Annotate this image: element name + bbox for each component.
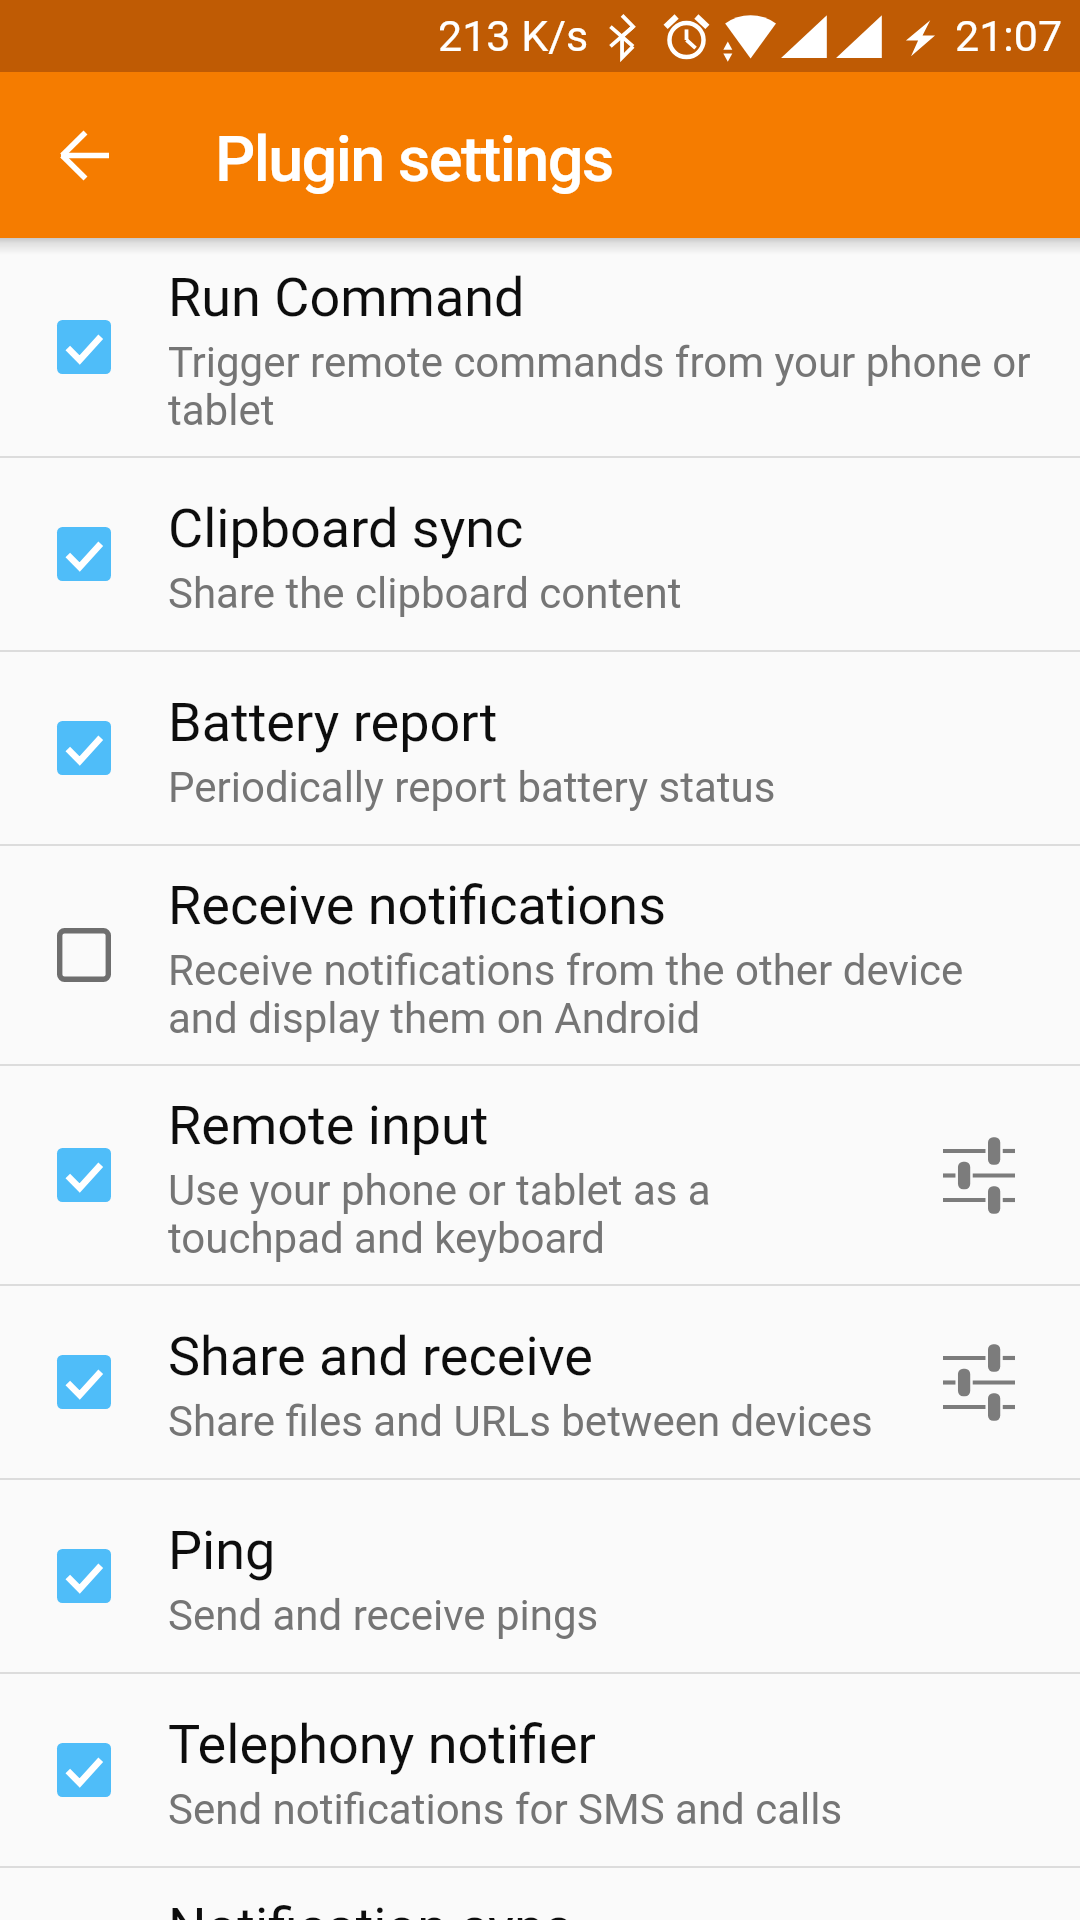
staticText: Remote input xyxy=(168,1095,489,1157)
button[interactable]: Plugin settings xyxy=(930,1307,1080,1457)
staticText: Use your phone or tablet as a touchpad a… xyxy=(168,1167,886,1263)
staticText: Clipboard sync xyxy=(168,498,524,560)
staticText: 21:07 xyxy=(955,11,1063,61)
staticText: Run Command xyxy=(168,267,525,329)
staticText: Receive notifications xyxy=(168,875,667,937)
staticText: Share and receive xyxy=(168,1326,593,1388)
staticText: Periodically report battery status xyxy=(168,764,776,812)
button[interactable]: Remote input xyxy=(0,1066,1080,1284)
staticText: Ping xyxy=(168,1520,276,1582)
button[interactable]: Battery report xyxy=(0,652,1080,844)
button[interactable]: Receive notifications xyxy=(0,846,1080,1064)
button[interactable]: Notification sync xyxy=(0,1868,1080,1920)
button[interactable]: Telephony notifier xyxy=(0,1674,1080,1866)
staticText: 213 K/s xyxy=(438,11,589,61)
staticText: Send and receive pings xyxy=(168,1592,599,1640)
staticText: Telephony notifier xyxy=(168,1714,596,1776)
staticText: Share files and URLs between devices xyxy=(168,1398,873,1446)
staticText: Share the clipboard content xyxy=(168,570,682,618)
button[interactable]: Clipboard sync xyxy=(0,458,1080,650)
button[interactable]: Run Command xyxy=(0,238,1080,456)
button[interactable]: Plugin settings xyxy=(930,1100,1080,1250)
staticText: Plugin settings xyxy=(215,122,613,196)
staticText: Trigger remote commands from your phone … xyxy=(168,339,1036,435)
button[interactable]: Share and receive xyxy=(0,1286,1080,1478)
button[interactable]: Back xyxy=(22,93,146,217)
staticText: Receive notifications from the other dev… xyxy=(168,947,1036,1043)
staticText: Send notifications for SMS and calls xyxy=(168,1786,843,1834)
staticText: Battery report xyxy=(168,692,498,754)
staticText: Notification sync xyxy=(168,1897,572,1920)
button[interactable]: Ping xyxy=(0,1480,1080,1672)
